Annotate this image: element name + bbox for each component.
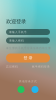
staticText: 忘记密码 — [6, 65, 18, 68]
staticText: 欢迎登录 — [6, 18, 26, 25]
staticText: 登 录 — [23, 55, 32, 60]
staticText: 未注册的手机号登录后将自动注册 — [6, 46, 51, 50]
button[interactable]: 登 录 — [6, 53, 50, 62]
button[interactable]: 忘记密码 — [6, 65, 18, 68]
button[interactable]: 账号密码登录 — [32, 65, 50, 68]
staticText: 请输入密码 — [9, 39, 24, 42]
staticText: 账号密码登录 — [32, 65, 50, 68]
staticText: 其他登录方式 — [19, 80, 37, 83]
button[interactable]: WeChat login — [17, 86, 24, 93]
staticText: 请输入手机号 — [9, 30, 27, 34]
button[interactable]: QQ login — [31, 86, 38, 93]
